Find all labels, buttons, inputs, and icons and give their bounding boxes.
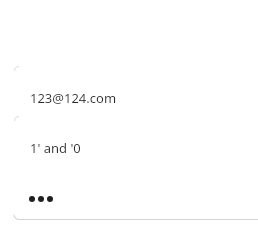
button[interactable]: 1' and '0 [0,130,258,166]
staticText: 1' and '0 [30,139,81,157]
button[interactable]: 123@124.com [0,80,258,116]
staticText: 123@124.com [30,89,117,107]
button[interactable]: More options [0,186,258,212]
